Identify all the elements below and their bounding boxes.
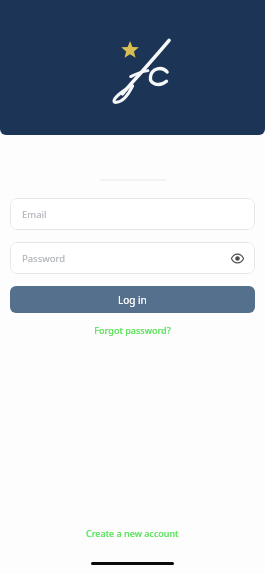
- button[interactable]: Create a new account: [72, 523, 193, 543]
- staticText: Forgot password?: [94, 324, 171, 336]
- button[interactable]: Password: [10, 242, 255, 274]
- staticText: Password: [22, 252, 65, 265]
- staticText: Log in: [118, 293, 147, 307]
- staticText: Email: [22, 208, 47, 221]
- button[interactable]: Log in: [10, 286, 255, 313]
- button[interactable]: Forgot password?: [0, 321, 265, 339]
- staticText: Create a new account: [86, 527, 179, 539]
- button[interactable]: Email: [10, 198, 255, 230]
- button[interactable]: Show password: [229, 250, 245, 266]
